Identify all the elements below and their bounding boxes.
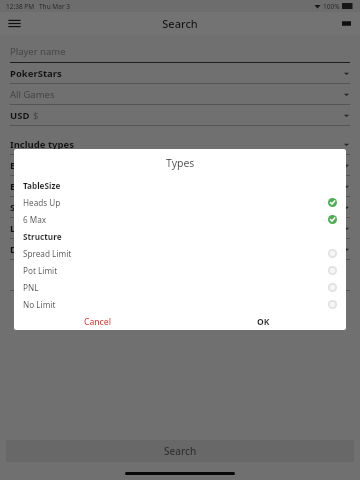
staticText: No Limit [23, 299, 56, 310]
staticText: Thu Mar 3 [39, 2, 70, 11]
staticText: Limits [10, 222, 40, 235]
button[interactable]: 6 Max [14, 211, 346, 228]
button[interactable]: Stakes [10, 197, 350, 218]
staticText: Heads Up [23, 197, 61, 208]
button[interactable]: Heads Up [14, 194, 346, 211]
staticText: Spread Limit [23, 248, 72, 259]
button[interactable]: No Limit [14, 296, 346, 313]
button[interactable]: All Games [10, 84, 350, 105]
staticText: OK [257, 316, 270, 328]
staticText: PokerStars [10, 67, 62, 80]
staticText: $ [33, 109, 39, 122]
button[interactable]: Exclude types [10, 155, 350, 176]
button[interactable]: More options [336, 13, 356, 33]
button[interactable]: OK [180, 313, 346, 330]
staticText: Include types [10, 138, 74, 151]
staticText: Types [166, 156, 195, 170]
button[interactable]: Entrants [10, 176, 350, 197]
staticText: All Games [10, 88, 55, 101]
staticText: USD [10, 109, 30, 122]
staticText: TableSize [23, 180, 61, 191]
button[interactable]: Search [6, 440, 354, 462]
button[interactable]: Limits [10, 218, 350, 239]
staticText: Pot Limit [23, 265, 58, 276]
staticText: 6 Max [23, 214, 47, 225]
staticText: Structure [23, 231, 62, 242]
button[interactable]: PokerStars [10, 63, 350, 84]
staticText: 12:38 PM [6, 2, 35, 11]
staticText: 100% [323, 2, 340, 11]
button[interactable]: PNL [14, 279, 346, 296]
staticText: Search [164, 444, 197, 458]
staticText: Cancel [84, 316, 111, 328]
staticText: Stakes [10, 201, 42, 214]
button[interactable]: Include types [10, 134, 350, 155]
staticText: Search [162, 16, 198, 31]
staticText: PNL [23, 282, 39, 293]
staticText: Player name [10, 45, 66, 58]
staticText: Exclude types [10, 159, 75, 172]
staticText: Date [10, 243, 33, 256]
button[interactable]: USD [10, 105, 350, 126]
button[interactable]: Date [10, 239, 350, 260]
button[interactable]: Spread Limit [14, 245, 346, 262]
button[interactable]: Pot Limit [14, 262, 346, 279]
button[interactable]: Menu [4, 13, 24, 33]
staticText: Entrants [10, 180, 51, 193]
button[interactable]: Cancel [14, 313, 180, 330]
